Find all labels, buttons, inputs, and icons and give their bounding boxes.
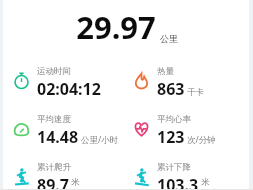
- other: Total descent: [132, 167, 151, 186]
- staticText: 29.97: [76, 6, 156, 48]
- staticText: 累计爬升: [37, 162, 71, 173]
- staticText: 千卡: [187, 87, 204, 98]
- button[interactable]: Average heart rate: [132, 114, 253, 148]
- staticText: 103.3: [157, 174, 199, 190]
- staticText: 863: [157, 78, 185, 100]
- button[interactable]: Average speed: [12, 114, 132, 148]
- staticText: 14.48: [37, 126, 79, 148]
- staticText: 平均心率: [157, 114, 191, 125]
- staticText: 运动时间: [37, 66, 71, 77]
- staticText: 米: [201, 177, 210, 188]
- staticText: 02:04:12: [37, 78, 101, 100]
- staticText: 热量: [157, 66, 174, 77]
- button[interactable]: 29.97: [0, 6, 253, 48]
- staticText: 123: [157, 126, 185, 148]
- button[interactable]: Calories: [132, 66, 253, 100]
- other: Duration: [12, 71, 31, 90]
- staticText: 公里/小时: [81, 134, 119, 146]
- staticText: 公里: [160, 33, 178, 44]
- other: Calories: [132, 71, 151, 90]
- staticText: 累计下降: [157, 162, 191, 173]
- other: Total ascent: [12, 167, 31, 186]
- button[interactable]: Total ascent: [12, 162, 132, 190]
- other: Average heart rate: [132, 119, 151, 138]
- other: Average speed: [12, 119, 31, 138]
- staticText: 89.7: [37, 174, 69, 190]
- button[interactable]: Total descent: [132, 162, 253, 190]
- button[interactable]: Duration: [12, 66, 132, 100]
- staticText: 米: [71, 177, 80, 188]
- staticText: 平均速度: [37, 114, 71, 125]
- staticText: 次/分钟: [187, 134, 216, 146]
